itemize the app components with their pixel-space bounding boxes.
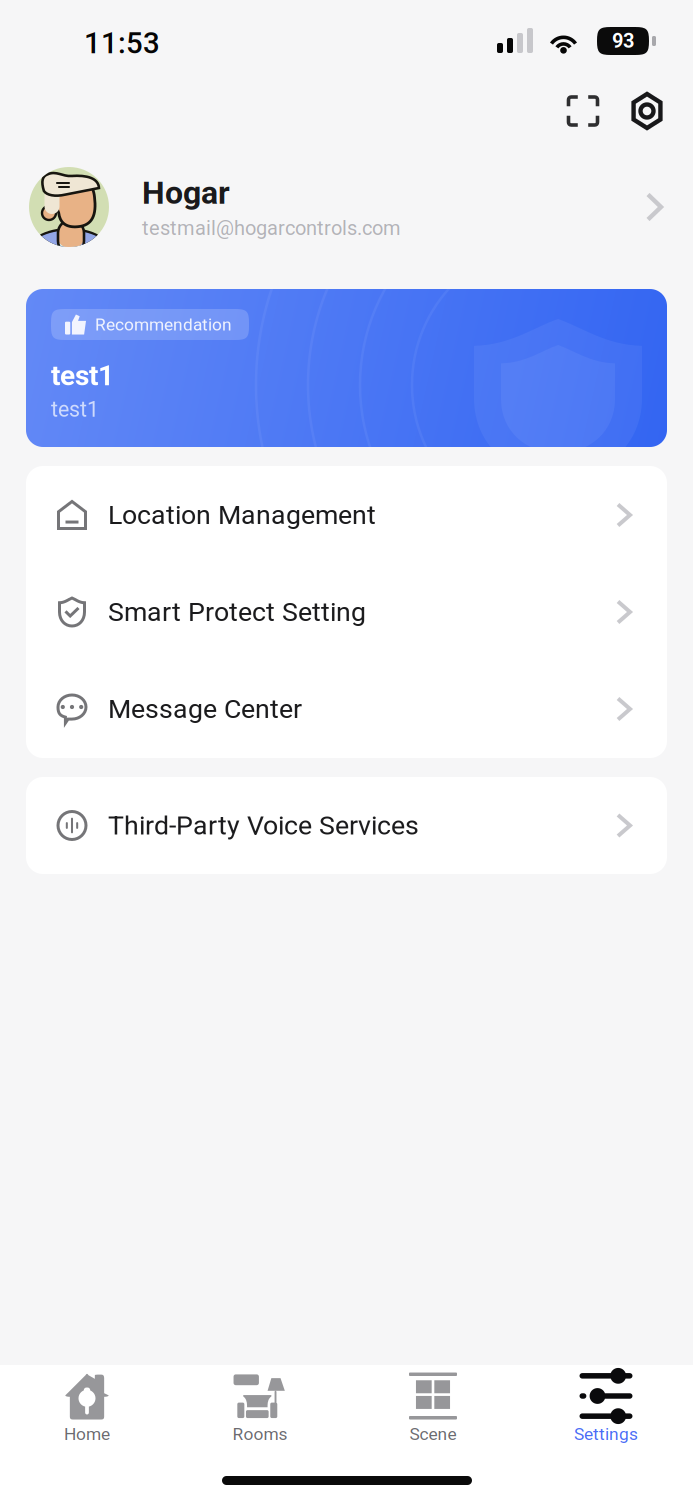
button[interactable]: Scene: [346, 1372, 519, 1456]
staticText: Location Management: [108, 499, 376, 531]
staticText: Third-Party Voice Services: [108, 810, 419, 841]
button[interactable]: Location Management: [26, 466, 667, 563]
button[interactable]: Account settings: [615, 79, 679, 143]
staticText: 93: [612, 29, 634, 53]
staticText: Settings: [574, 1424, 638, 1444]
button[interactable]: Scan code: [551, 79, 615, 143]
staticText: testmail@hogarcontrols.com: [142, 216, 401, 240]
button[interactable]: Smart Protect Setting: [26, 563, 667, 660]
staticText: Recommendation: [95, 314, 232, 335]
button[interactable]: Message Center: [26, 660, 667, 757]
button[interactable]: Settings: [519, 1372, 692, 1456]
staticText: Smart Protect Setting: [108, 596, 366, 628]
staticText: Scene: [409, 1424, 456, 1444]
staticText: test1: [51, 359, 114, 392]
button[interactable]: Hogar: [0, 166, 693, 248]
staticText: Rooms: [232, 1424, 287, 1444]
staticText: Home: [64, 1424, 110, 1444]
button[interactable]: Recommendation: [26, 289, 667, 447]
button[interactable]: Rooms: [173, 1372, 346, 1456]
button[interactable]: Home: [0, 1372, 173, 1456]
button[interactable]: Third-Party Voice Services: [26, 777, 667, 874]
staticText: 11:53: [84, 26, 160, 60]
staticText: Message Center: [108, 693, 302, 725]
staticText: Hogar: [142, 174, 230, 211]
staticText: test1: [51, 397, 99, 422]
